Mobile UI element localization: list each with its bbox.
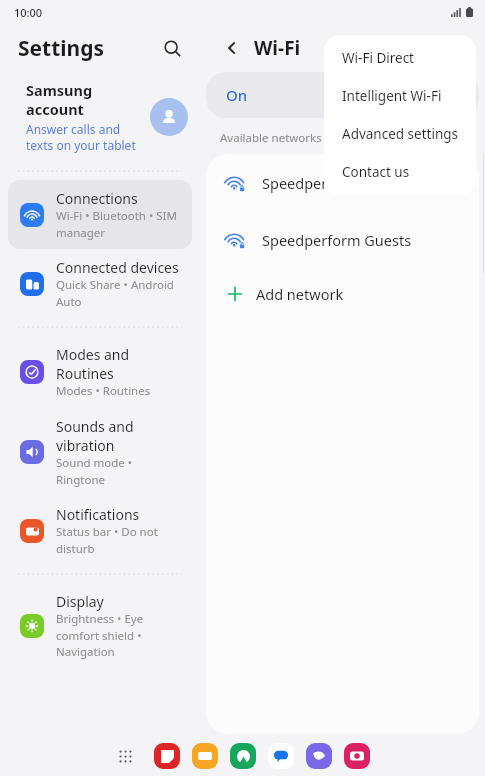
staticText: Intelligent Wi-Fi [342, 87, 442, 105]
button[interactable]: Display [8, 583, 192, 668]
button[interactable]: Advanced settings [324, 115, 476, 153]
staticText: Answer calls and texts on your tablet [26, 121, 144, 154]
staticText: Add network [256, 284, 344, 304]
staticText: Speedperform [262, 173, 361, 193]
button[interactable]: Speedperform [206, 154, 479, 211]
staticText: Brightness • Eye comfort shield • Naviga… [56, 611, 184, 659]
button[interactable]: Add network [206, 268, 479, 320]
button[interactable]: On [206, 72, 479, 118]
staticText: Quick Share • Android Auto [56, 277, 184, 309]
staticText: Wi-Fi • Bluetooth • SIM manager [56, 208, 184, 240]
button[interactable]: Connected devices [8, 249, 192, 318]
button[interactable]: Sounds and vibration [8, 408, 192, 496]
staticText: Sounds and vibration [56, 417, 184, 455]
button[interactable]: Samsung account [0, 72, 200, 162]
staticText: Speedperform Guests [262, 230, 412, 250]
button[interactable]: Back [218, 34, 246, 62]
staticText: Available networks [220, 130, 322, 146]
button[interactable]: Search [152, 28, 192, 68]
button[interactable]: Contact us [324, 153, 476, 191]
staticText: On [226, 85, 248, 105]
staticText: Sound mode • Ringtone [56, 455, 184, 487]
staticText: Wi-Fi [254, 35, 301, 61]
staticText: Contact us [342, 163, 410, 181]
staticText: Notifications [56, 505, 140, 524]
staticText: Modes • Routines [56, 383, 151, 399]
staticText: Connected devices [56, 258, 179, 277]
button[interactable]: Account [150, 98, 188, 136]
staticText: Wi-Fi Direct [342, 49, 414, 67]
button[interactable]: Speedperform Guests [206, 211, 479, 268]
button[interactable]: Connections [8, 180, 192, 249]
button[interactable]: Files [192, 743, 218, 769]
staticText: Samsung account [26, 80, 144, 119]
staticText: Status bar • Do not disturb [56, 524, 184, 556]
button[interactable]: Notifications [8, 496, 192, 565]
staticText: Modes and Routines [56, 345, 184, 383]
staticText: Settings [18, 34, 105, 63]
button[interactable]: Wi-Fi Direct [324, 39, 476, 77]
button[interactable]: Intelligent Wi-Fi [324, 77, 476, 115]
staticText: Advanced settings [342, 125, 459, 143]
staticText: 10:00 [14, 5, 43, 20]
button[interactable]: Internet [306, 743, 332, 769]
staticText: Display [56, 592, 104, 611]
button[interactable]: Notes [154, 743, 180, 769]
button[interactable]: Camera [344, 743, 370, 769]
button[interactable]: Apps [110, 741, 140, 771]
button[interactable]: Modes and Routines [8, 336, 192, 408]
button[interactable]: Messages [268, 743, 294, 769]
staticText: Connections [56, 189, 138, 208]
button[interactable]: Phone [230, 743, 256, 769]
